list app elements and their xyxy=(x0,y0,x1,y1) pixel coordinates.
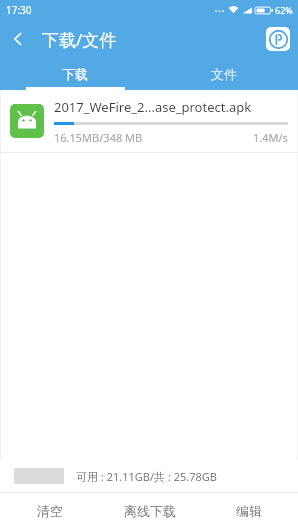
button[interactable]: App logo xyxy=(266,27,290,51)
button[interactable]: Back xyxy=(0,21,36,57)
staticText: 62% xyxy=(275,4,293,16)
staticText: 2017_WeFire_2...ase_protect.apk xyxy=(54,98,252,116)
staticText: 清空 xyxy=(37,503,63,519)
staticText: 编辑 xyxy=(236,503,262,519)
button[interactable]: 下载 xyxy=(0,58,149,90)
button[interactable]: 离线下载 xyxy=(100,493,199,529)
staticText: 下载 xyxy=(62,66,88,82)
staticText: 1.4M/s xyxy=(253,130,288,145)
staticText: 可用 : 21.11GB/共 : 25.78GB xyxy=(76,469,217,484)
staticText: 离线下载 xyxy=(124,503,176,519)
button[interactable]: 清空 xyxy=(0,493,100,529)
staticText: 文件 xyxy=(211,66,237,82)
button[interactable]: 2017_WeFire_2...ase_protect.apk xyxy=(0,90,298,152)
button[interactable]: 文件 xyxy=(149,58,298,90)
staticText: 下载/文件 xyxy=(42,28,117,51)
staticText: 17:30 xyxy=(6,3,32,17)
staticText: 16.15MB/348 MB xyxy=(54,130,143,145)
button[interactable]: 编辑 xyxy=(199,493,298,529)
